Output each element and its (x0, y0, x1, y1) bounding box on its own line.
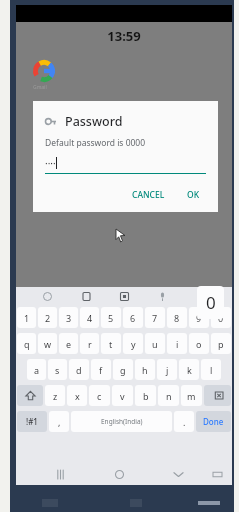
button[interactable]: q (17, 333, 36, 354)
button[interactable]: . (174, 411, 194, 432)
staticText: 0 (218, 312, 224, 324)
staticText: . (183, 416, 186, 428)
staticText: ···· (45, 156, 56, 170)
staticText: 6 (130, 312, 136, 324)
button[interactable]: Settings (194, 289, 208, 303)
staticText: r (88, 338, 92, 350)
staticText: 8 (174, 312, 180, 324)
staticText: 4 (87, 312, 93, 324)
button[interactable]: 8 (167, 307, 187, 328)
button[interactable]: Shift (17, 385, 43, 406)
staticText: 2 (45, 312, 51, 324)
button[interactable]: r (80, 333, 99, 354)
button[interactable]: u (145, 333, 165, 354)
button[interactable]: Emoji (40, 289, 54, 303)
button[interactable]: Home (110, 465, 128, 483)
staticText: c (97, 390, 102, 402)
button[interactable]: v (112, 385, 133, 406)
staticText: CANCEL (132, 189, 165, 201)
button[interactable]: Voice input (155, 289, 169, 303)
button[interactable]: o (189, 333, 209, 354)
staticText: k (187, 364, 192, 376)
button[interactable]: Clipboard (79, 289, 93, 303)
button[interactable]: Back (169, 465, 187, 483)
staticText: g (120, 364, 126, 376)
staticText: w (44, 338, 52, 350)
button[interactable]: k (179, 359, 199, 380)
button[interactable]: Translate (117, 289, 131, 303)
button[interactable]: e (59, 333, 78, 354)
button[interactable]: Backspace (204, 385, 231, 406)
staticText: 7 (152, 312, 158, 324)
staticText: u (152, 338, 158, 350)
button[interactable]: English(India) (71, 411, 172, 432)
staticText: t (109, 338, 113, 350)
staticText: m (187, 390, 196, 402)
button[interactable]: OK (183, 185, 204, 205)
button[interactable]: h (135, 359, 155, 380)
staticText: 13:59 (16, 27, 232, 45)
staticText: b (143, 390, 149, 402)
staticText: l (210, 364, 213, 376)
staticText: 5 (108, 312, 114, 324)
button[interactable]: t (101, 333, 121, 354)
staticText: p (218, 338, 224, 350)
button[interactable]: Done (196, 411, 231, 432)
button[interactable]: a (27, 359, 46, 380)
staticText: s (55, 364, 60, 376)
staticText: y (131, 338, 136, 350)
button[interactable]: CANCEL (128, 185, 169, 205)
staticText: x (75, 390, 80, 402)
staticText: Password (65, 113, 123, 130)
button[interactable]: 0 (211, 307, 231, 328)
staticText: i (176, 338, 179, 350)
button[interactable]: p (211, 333, 231, 354)
staticText: Done (203, 416, 224, 427)
button[interactable]: g (113, 359, 133, 380)
button[interactable]: Recents (51, 465, 69, 483)
button[interactable]: z (45, 385, 65, 406)
button[interactable]: i (167, 333, 187, 354)
staticText: Default password is 0000 (45, 137, 146, 149)
button[interactable]: 1 (17, 307, 36, 328)
staticText: 1 (24, 312, 30, 324)
staticText: h (142, 364, 148, 376)
button[interactable]: 3 (59, 307, 78, 328)
button[interactable]: x (67, 385, 87, 406)
button[interactable]: w (38, 333, 57, 354)
staticText: o (196, 338, 202, 350)
staticText: j (166, 364, 169, 376)
staticText: 0 (206, 291, 216, 314)
button[interactable]: s (48, 359, 67, 380)
staticText: d (76, 364, 82, 376)
button[interactable]: 9 (189, 307, 209, 328)
staticText: z (53, 390, 58, 402)
button[interactable]: y (123, 333, 143, 354)
button[interactable]: b (135, 385, 156, 406)
staticText: English(India) (101, 417, 143, 426)
button[interactable]: m (181, 385, 202, 406)
staticText: 3 (66, 312, 72, 324)
button[interactable]: Keyboard (208, 465, 226, 483)
button[interactable]: c (89, 385, 110, 406)
button[interactable]: j (157, 359, 177, 380)
button[interactable]: l (201, 359, 221, 380)
staticText: e (66, 338, 72, 350)
button[interactable]: d (69, 359, 89, 380)
staticText: q (24, 338, 30, 350)
button[interactable]: 7 (145, 307, 165, 328)
staticText: n (166, 390, 172, 402)
staticText: v (120, 390, 125, 402)
button[interactable]: 4 (80, 307, 99, 328)
staticText: Gmail (33, 84, 47, 91)
button[interactable]: f (91, 359, 111, 380)
staticText: a (34, 364, 40, 376)
staticText: f (99, 364, 103, 376)
button[interactable]: n (158, 385, 179, 406)
button[interactable]: 5 (101, 307, 121, 328)
button[interactable]: !#1 (17, 411, 47, 432)
button[interactable]: 6 (123, 307, 143, 328)
staticText: , (58, 416, 61, 428)
button[interactable]: 2 (38, 307, 57, 328)
button[interactable]: , (49, 411, 69, 432)
